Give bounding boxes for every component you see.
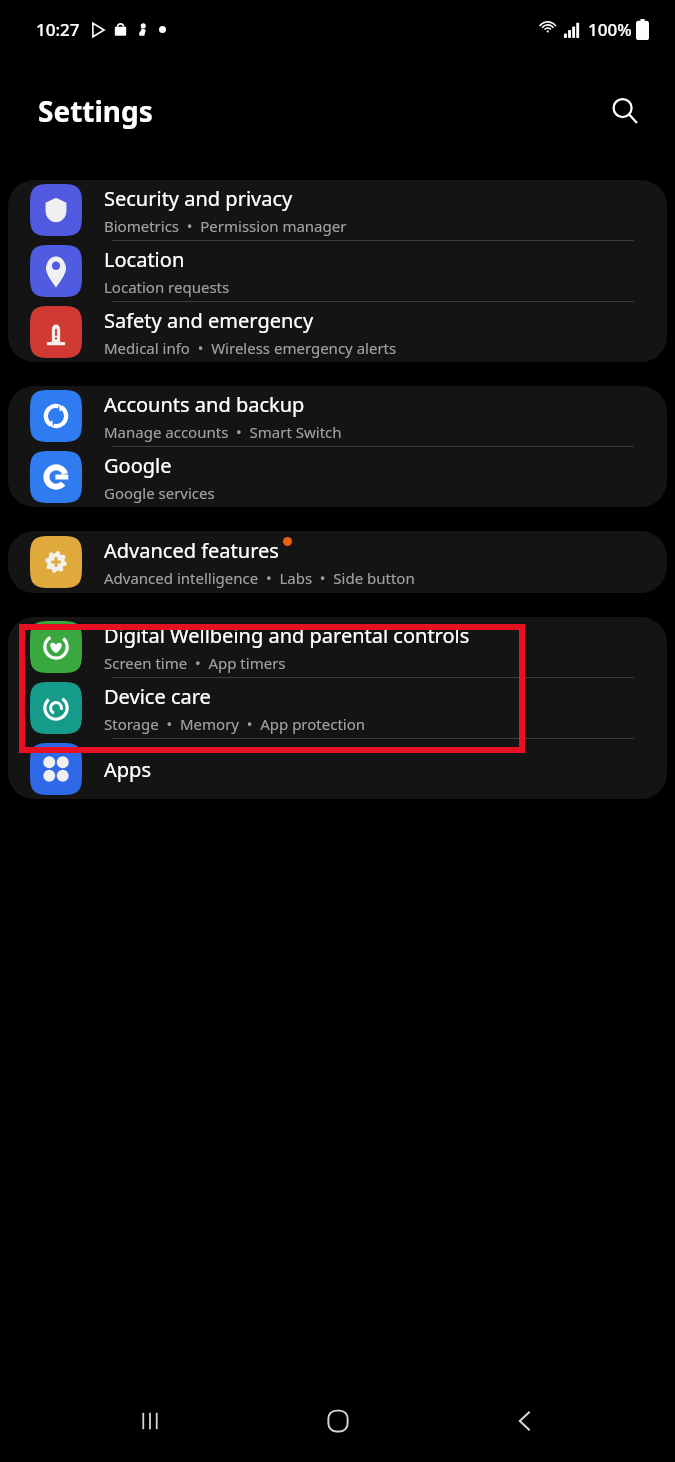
staticText: Location requests [104, 277, 230, 297]
button[interactable]: Home [300, 1383, 376, 1459]
staticText: Location [104, 246, 185, 273]
staticText: 100% [588, 18, 632, 41]
staticText: Accounts and backup [104, 391, 305, 418]
button[interactable]: Google [8, 447, 667, 507]
button[interactable]: Apps [8, 739, 667, 799]
button[interactable]: Device care [8, 678, 667, 738]
staticText: Biometrics • Permission manager [104, 216, 347, 236]
button[interactable]: Recent apps [112, 1383, 188, 1459]
staticText: Settings [38, 92, 153, 130]
staticText: Manage accounts • Smart Switch [104, 422, 342, 442]
button[interactable]: Security and privacy [8, 180, 667, 240]
staticText: Advanced intelligence • Labs • Side butt… [104, 568, 415, 588]
staticText: Google services [104, 483, 215, 503]
button[interactable]: Search [599, 85, 651, 137]
staticText: Advanced features [104, 537, 279, 564]
staticText: Security and privacy [104, 185, 293, 212]
staticText: Safety and emergency [104, 307, 314, 334]
button[interactable]: Digital Wellbeing and parental controls [8, 617, 667, 677]
staticText: Digital Wellbeing and parental controls [104, 622, 470, 649]
button[interactable]: Accounts and backup [8, 386, 667, 446]
staticText: Storage • Memory • App protection [104, 714, 366, 734]
button[interactable]: Back [487, 1383, 563, 1459]
staticText: Apps [104, 756, 151, 783]
button[interactable]: Advanced features [8, 531, 667, 593]
button[interactable]: Location [8, 241, 667, 301]
staticText: Device care [104, 683, 211, 710]
staticText: Medical info • Wireless emergency alerts [104, 338, 397, 358]
staticText: 10:27 [36, 18, 80, 41]
staticText: Screen time • App timers [104, 653, 286, 673]
button[interactable]: Safety and emergency [8, 302, 667, 362]
staticText: Google [104, 452, 172, 479]
